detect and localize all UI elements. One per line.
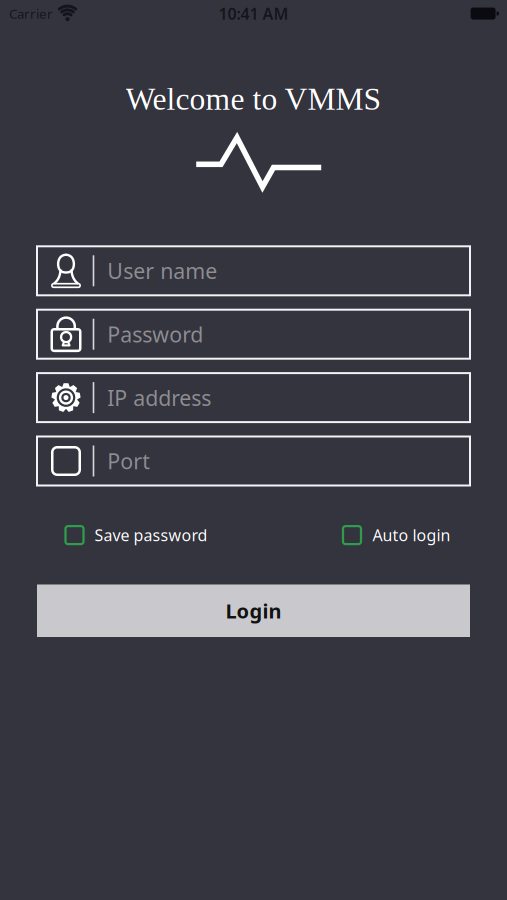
staticText: User name xyxy=(107,257,217,285)
button[interactable]: Save password xyxy=(65,524,207,546)
button[interactable]: Auto login xyxy=(343,524,450,546)
button[interactable]: User name xyxy=(37,246,470,295)
button[interactable]: Login xyxy=(37,584,470,637)
staticText: Port xyxy=(107,447,150,475)
staticText: Password xyxy=(107,320,203,348)
button[interactable]: Password xyxy=(37,310,470,359)
staticText: Save password xyxy=(94,524,207,546)
staticText: IP address xyxy=(107,383,211,412)
staticText: Welcome to VMMS xyxy=(125,81,381,116)
button[interactable]: Port xyxy=(37,436,470,485)
staticText: Carrier xyxy=(9,5,53,22)
staticText: Auto login xyxy=(372,524,450,546)
staticText: Login xyxy=(225,597,281,624)
button[interactable]: IP address xyxy=(37,373,470,422)
staticText: 10:41 AM xyxy=(218,3,288,24)
